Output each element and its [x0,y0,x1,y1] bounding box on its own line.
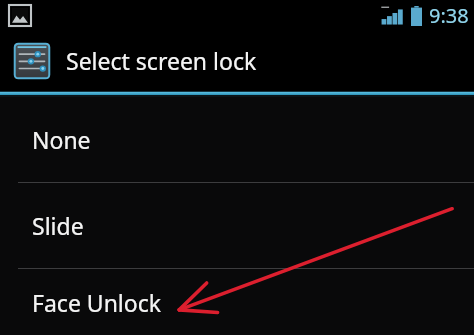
staticText: None [32,124,91,155]
staticText: Face Unlock [32,287,162,318]
button[interactable]: Select screen lock [0,30,474,91]
staticText: Slide [32,210,84,241]
staticText: 9:38 [429,2,469,29]
button[interactable]: Slide [0,183,474,268]
staticText: Select screen lock [66,45,257,76]
button[interactable]: Face Unlock [0,269,474,335]
button[interactable]: None [0,97,474,182]
